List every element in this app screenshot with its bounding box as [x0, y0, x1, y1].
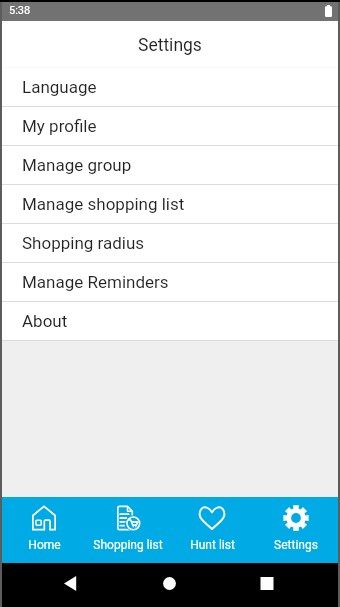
button[interactable]: My profile [2, 107, 338, 146]
button[interactable]: Settings [254, 497, 338, 563]
button[interactable]: Hunt list [170, 497, 254, 563]
staticText: Manage group [22, 155, 132, 175]
staticText: Hunt list [190, 538, 235, 552]
staticText: Manage shopping list [22, 194, 185, 214]
staticText: Home [28, 538, 61, 552]
button[interactable]: Shopping radius [2, 224, 338, 263]
button[interactable]: Manage group [2, 146, 338, 185]
staticText: Manage Reminders [22, 272, 169, 292]
button[interactable]: Home [2, 497, 86, 563]
other: Battery [325, 5, 332, 17]
staticText: Shopping list [93, 538, 163, 552]
staticText: My profile [22, 116, 97, 136]
button[interactable]: Back [48, 563, 92, 607]
button[interactable]: Manage shopping list [2, 185, 338, 224]
button[interactable]: Shopping list [86, 497, 170, 563]
staticText: Settings [274, 538, 318, 552]
staticText: About [22, 311, 68, 331]
button[interactable]: Manage Reminders [2, 263, 338, 302]
button[interactable]: Recent apps [245, 563, 289, 607]
button[interactable]: Home [147, 563, 191, 607]
button[interactable]: Language [2, 68, 338, 107]
staticText: 5:38 [9, 4, 31, 17]
staticText: Settings [138, 35, 202, 56]
staticText: Language [22, 77, 97, 97]
button[interactable]: About [2, 302, 338, 341]
staticText: Shopping radius [22, 233, 145, 253]
